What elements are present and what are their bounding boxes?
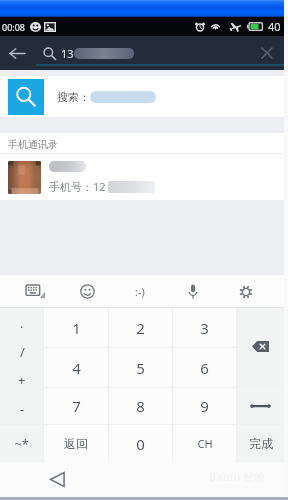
- staticText: -: [20, 400, 25, 418]
- button[interactable]: Symbols: [0, 308, 43, 424]
- button[interactable]: 3: [173, 308, 236, 347]
- staticText: /: [20, 343, 25, 361]
- staticText: 0: [136, 434, 145, 454]
- staticText: CH: [197, 436, 213, 451]
- button[interactable]: Search: [8, 79, 44, 115]
- staticText: 3: [200, 318, 209, 338]
- button[interactable]: 7: [44, 388, 108, 424]
- staticText: 5: [136, 358, 145, 378]
- button[interactable]: Voice input: [166, 275, 219, 308]
- button[interactable]: Keyboard settings: [219, 275, 272, 308]
- staticText: 1: [72, 318, 81, 338]
- button[interactable]: 4: [44, 348, 108, 387]
- button[interactable]: 2: [109, 308, 172, 347]
- button[interactable]: Emoticons: [113, 275, 166, 308]
- button[interactable]: 返回: [44, 425, 108, 462]
- staticText: 手机号：12: [49, 179, 106, 194]
- button[interactable]: Back: [42, 464, 73, 495]
- button[interactable]: 0: [109, 425, 172, 462]
- staticText: .: [20, 314, 24, 332]
- button[interactable]: 完成: [237, 425, 284, 462]
- staticText: 完成: [249, 436, 273, 451]
- staticText: 9: [200, 396, 209, 416]
- button[interactable]: 手机号：12: [0, 154, 284, 200]
- button[interactable]: 9: [173, 388, 236, 424]
- staticText: 13: [61, 46, 74, 61]
- button[interactable]: Clear search: [250, 36, 284, 70]
- button[interactable]: Emoji: [61, 275, 113, 308]
- button[interactable]: ~*: [0, 425, 43, 462]
- button[interactable]: CH: [173, 425, 236, 462]
- button[interactable]: Space: [237, 386, 284, 424]
- button[interactable]: Back: [0, 36, 34, 70]
- button[interactable]: Keyboard layout: [9, 275, 61, 308]
- staticText: 返回: [64, 436, 88, 451]
- staticText: +: [18, 371, 26, 389]
- staticText: 7: [72, 396, 81, 416]
- staticText: 00:08: [2, 21, 26, 33]
- button[interactable]: 8: [109, 388, 172, 424]
- button[interactable]: 1: [44, 308, 108, 347]
- staticText: 搜索：: [57, 90, 90, 104]
- staticText: 40: [268, 19, 281, 34]
- button[interactable]: 5: [109, 348, 172, 387]
- staticText: 6: [200, 358, 209, 378]
- staticText: 2: [136, 318, 145, 338]
- staticText: ~*: [14, 435, 29, 453]
- staticText: 4: [72, 358, 81, 378]
- staticText: :-): [135, 284, 145, 299]
- button[interactable]: Backspace: [237, 308, 284, 385]
- staticText: 8: [136, 396, 145, 416]
- button[interactable]: 6: [173, 348, 236, 387]
- staticText: 手机通讯录: [8, 138, 58, 151]
